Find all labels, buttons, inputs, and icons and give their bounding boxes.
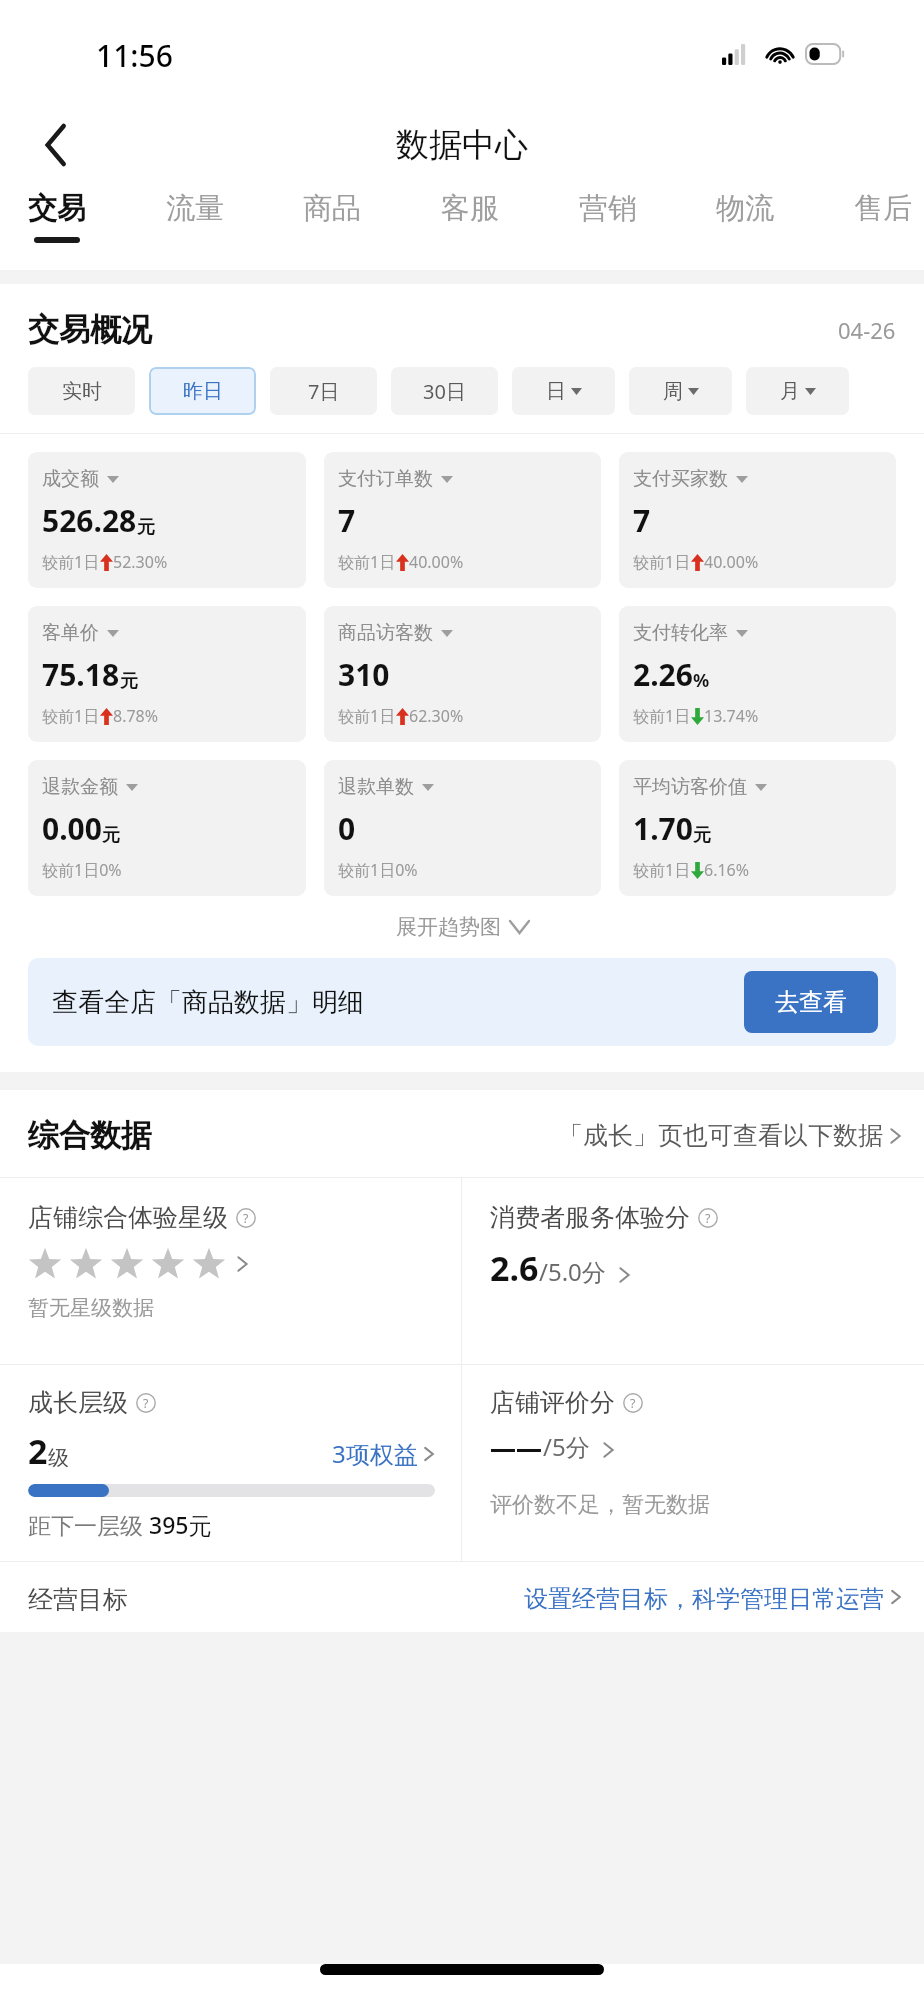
button[interactable]: 实时 [28, 367, 135, 415]
staticText: 暂无星级数据 [28, 1295, 154, 1321]
staticText: 综合数据 [28, 1116, 152, 1155]
staticText: 物流 [716, 190, 774, 227]
staticText: 7 [338, 500, 356, 541]
staticText: 距下一层级 [28, 1509, 149, 1540]
button[interactable]: 商品 [297, 190, 367, 237]
staticText: 2.6 [490, 1245, 539, 1291]
staticText: /5分 [543, 1430, 590, 1463]
button[interactable]: Back [26, 115, 86, 175]
button[interactable]: 月 [746, 367, 849, 415]
staticText: 较前1日 [42, 551, 100, 573]
button[interactable]: 展开趋势图 [0, 896, 924, 958]
staticText: 7 [633, 500, 651, 541]
staticText: 元 [693, 824, 711, 847]
staticText: 310 [338, 654, 390, 695]
staticText: 支付买家数 [633, 467, 728, 491]
staticText: 售后 [854, 190, 912, 227]
button[interactable]: 客单价 [28, 606, 306, 742]
staticText: ? [243, 1210, 249, 1227]
staticText: 62.30% [409, 705, 464, 727]
button[interactable]: 昨日 [149, 367, 256, 415]
staticText: 昨日 [183, 379, 223, 404]
staticText: 交易概况 [28, 310, 152, 349]
staticText: 日 [546, 379, 566, 404]
staticText: 52.30% [113, 551, 168, 573]
button[interactable]: 3项权益 [332, 1437, 435, 1470]
button[interactable]: 成交额 [28, 452, 306, 588]
button[interactable]: 退款金额 [28, 760, 306, 896]
staticText: 1.70 [633, 808, 693, 849]
staticText: 客单价 [42, 621, 99, 645]
staticText: 11:56 [96, 35, 173, 76]
staticText: 去查看 [775, 987, 847, 1017]
staticText: 平均访客价值 [633, 775, 747, 799]
staticText: 展开趋势图 [396, 914, 501, 940]
staticText: 较前1日 [633, 859, 691, 881]
staticText: 经营目标 [28, 1584, 128, 1615]
button[interactable]: 日 [512, 367, 615, 415]
button[interactable]: 「成长」页也可查看以下数据 [558, 1120, 902, 1151]
staticText: 成长层级 [28, 1387, 128, 1418]
staticText: 较前1日0% [42, 859, 122, 881]
button[interactable]: 物流 [710, 190, 780, 237]
button[interactable]: 商品访客数 [324, 606, 601, 742]
staticText: 交易 [28, 190, 86, 227]
staticText: 0 [338, 808, 356, 849]
staticText: 较前1日 [633, 551, 691, 573]
staticText: 30日 [423, 378, 466, 405]
button[interactable]: 支付买家数 [619, 452, 896, 588]
staticText: 店铺评价分 [490, 1387, 615, 1418]
button[interactable]: 消费者服务体验分 [462, 1178, 924, 1364]
staticText: 商品访客数 [338, 621, 433, 645]
staticText: 成交额 [42, 467, 99, 491]
staticText: 13.74% [704, 705, 759, 727]
staticText: 商品 [303, 190, 361, 227]
button[interactable]: 支付订单数 [324, 452, 601, 588]
button[interactable]: 营销 [573, 190, 643, 237]
staticText: 店铺综合体验星级 [28, 1202, 228, 1233]
button[interactable]: 成长层级 [0, 1365, 461, 1561]
staticText: 8.78% [113, 705, 159, 727]
staticText: ? [143, 1395, 149, 1412]
staticText: 月 [780, 379, 800, 404]
button[interactable]: 流量 [160, 190, 230, 237]
staticText: % [693, 668, 710, 693]
staticText: 元 [120, 670, 138, 693]
staticText: 支付订单数 [338, 467, 433, 491]
staticText: 消费者服务体验分 [490, 1202, 690, 1233]
button[interactable]: 去查看 [744, 971, 878, 1033]
staticText: 40.00% [409, 551, 464, 573]
button[interactable]: 客服 [435, 190, 505, 237]
button[interactable]: 退款单数 [324, 760, 601, 896]
staticText: 7日 [308, 378, 340, 405]
button[interactable]: 店铺综合体验星级 [0, 1178, 461, 1364]
staticText: ? [630, 1395, 636, 1412]
staticText: 较前1日0% [338, 859, 418, 881]
button[interactable]: 周 [629, 367, 732, 415]
staticText: 评价数不足，暂无数据 [490, 1491, 710, 1519]
button[interactable]: 售后 [848, 190, 918, 237]
staticText: 实时 [62, 379, 102, 404]
staticText: 较前1日 [338, 705, 396, 727]
staticText: 设置经营目标，科学管理日常运营 [524, 1584, 884, 1614]
button[interactable]: 平均访客价值 [619, 760, 896, 896]
staticText: 「成长」页也可查看以下数据 [558, 1120, 883, 1151]
staticText: 退款单数 [338, 775, 414, 799]
staticText: 526.28 [42, 500, 137, 541]
staticText: 支付转化率 [633, 621, 728, 645]
staticText: 较前1日 [338, 551, 396, 573]
staticText: 395元 [149, 1509, 212, 1540]
button[interactable]: 支付转化率 [619, 606, 896, 742]
button[interactable]: 7日 [270, 367, 377, 415]
staticText: 2 [28, 1428, 48, 1474]
staticText: 40.00% [704, 551, 759, 573]
staticText: 0.00 [42, 808, 102, 849]
button[interactable]: 查看全店「商品数据」明细 [28, 958, 896, 1046]
staticText: 2.26 [633, 654, 693, 695]
button[interactable]: 30日 [391, 367, 498, 415]
button[interactable]: 交易 [22, 190, 92, 243]
staticText: 75.18 [42, 654, 120, 695]
staticText: 04-26 [838, 315, 896, 345]
button[interactable]: 店铺评价分 [462, 1365, 924, 1561]
staticText: 流量 [166, 190, 224, 227]
